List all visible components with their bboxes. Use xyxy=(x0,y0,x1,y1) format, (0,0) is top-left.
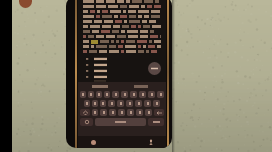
button[interactable] xyxy=(112,91,119,98)
button[interactable]: Home xyxy=(91,140,96,145)
button[interactable] xyxy=(84,100,90,107)
button[interactable] xyxy=(88,91,94,98)
button[interactable] xyxy=(136,109,143,116)
button[interactable]: Voice input xyxy=(148,139,154,145)
button[interactable] xyxy=(145,109,152,116)
button[interactable]: Shift xyxy=(80,109,90,116)
button[interactable] xyxy=(92,109,98,116)
button[interactable] xyxy=(86,56,166,62)
button[interactable]: Space xyxy=(95,118,146,126)
button[interactable]: Collapse xyxy=(148,62,161,75)
button[interactable]: Enter xyxy=(148,118,164,126)
button[interactable] xyxy=(139,91,146,98)
button[interactable] xyxy=(80,91,86,98)
button[interactable] xyxy=(86,62,166,68)
button[interactable] xyxy=(86,74,166,80)
button[interactable] xyxy=(144,100,151,107)
button[interactable] xyxy=(117,100,124,107)
button[interactable] xyxy=(108,100,115,107)
button[interactable] xyxy=(100,100,106,107)
button[interactable] xyxy=(121,91,128,98)
button[interactable] xyxy=(104,91,110,98)
button[interactable]: Backspace xyxy=(154,109,164,116)
button[interactable] xyxy=(96,91,102,98)
button[interactable] xyxy=(118,109,125,116)
button[interactable] xyxy=(153,100,160,107)
button[interactable] xyxy=(109,109,116,116)
button[interactable] xyxy=(126,100,133,107)
button[interactable] xyxy=(148,91,155,98)
button[interactable] xyxy=(86,68,166,74)
button[interactable] xyxy=(130,91,137,98)
button[interactable] xyxy=(135,100,142,107)
button[interactable] xyxy=(127,109,134,116)
button[interactable]: Emoji xyxy=(80,118,93,126)
button[interactable] xyxy=(92,100,98,107)
button[interactable] xyxy=(100,109,107,116)
button[interactable] xyxy=(157,91,164,98)
